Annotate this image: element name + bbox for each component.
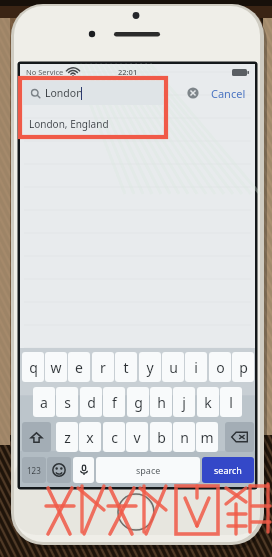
staticText: x (86, 428, 94, 447)
button[interactable]: i (185, 352, 207, 382)
button[interactable]: p (232, 352, 254, 382)
staticText: b (157, 428, 166, 447)
staticText: n (180, 428, 189, 447)
staticText: d (87, 393, 96, 412)
button[interactable]: g (127, 387, 149, 417)
button[interactable]: s (56, 387, 78, 417)
button[interactable]: Clear search (186, 86, 200, 100)
staticText: s (64, 393, 71, 412)
staticText: p (239, 358, 248, 377)
button[interactable]: London (23, 81, 163, 105)
button[interactable]: space (96, 457, 200, 483)
button[interactable]: k (197, 387, 219, 417)
button[interactable]: z (56, 422, 78, 452)
staticText: e (75, 358, 83, 377)
staticText: l (229, 393, 233, 412)
staticText: o (216, 358, 225, 377)
staticText: t (123, 358, 129, 377)
button[interactable]: r (92, 352, 114, 382)
button[interactable]: Shift (22, 422, 51, 452)
staticText: v (133, 428, 141, 447)
staticText: r (100, 358, 106, 377)
button[interactable]: Backspace (225, 422, 254, 452)
button[interactable]: h (150, 387, 172, 417)
staticText: y (146, 358, 154, 377)
staticText: 123 (27, 465, 41, 476)
staticText: c (111, 428, 118, 447)
button[interactable]: search (202, 457, 254, 483)
button[interactable]: l (220, 387, 242, 417)
button[interactable]: Dictation (73, 457, 94, 483)
staticText: a (40, 393, 48, 412)
button[interactable]: e (68, 352, 90, 382)
button[interactable]: u (162, 352, 184, 382)
button[interactable]: j (173, 387, 195, 417)
staticText: h (157, 393, 166, 412)
staticText: u (169, 358, 178, 377)
staticText: search (214, 464, 242, 476)
button[interactable]: Cancel (206, 83, 250, 103)
staticText: space (136, 464, 161, 476)
staticText: London, England (29, 117, 109, 131)
button[interactable]: x (79, 422, 101, 452)
staticText: m (200, 428, 214, 447)
button[interactable]: b (150, 422, 172, 452)
staticText: f (112, 393, 117, 412)
staticText: i (194, 358, 198, 377)
staticText: London (45, 86, 83, 100)
button[interactable]: Emoji (47, 457, 71, 483)
button[interactable]: o (209, 352, 231, 382)
staticText: w (50, 358, 62, 377)
staticText: No Service (26, 67, 64, 77)
button[interactable]: c (103, 422, 125, 452)
button[interactable]: London, England (20, 112, 255, 136)
staticText: q (29, 358, 38, 377)
button[interactable]: f (103, 387, 125, 417)
staticText: g (134, 393, 143, 412)
staticText: Cancel (211, 86, 246, 101)
staticText: k (204, 393, 212, 412)
button[interactable]: v (126, 422, 148, 452)
button[interactable]: m (196, 422, 218, 452)
button[interactable]: w (45, 352, 67, 382)
button[interactable]: d (80, 387, 102, 417)
button[interactable]: y (139, 352, 161, 382)
button[interactable]: Numbers and symbols (22, 457, 46, 483)
staticText: j (182, 393, 186, 412)
staticText: 22:01 (118, 67, 138, 77)
button[interactable]: n (173, 422, 195, 452)
button[interactable]: q (22, 352, 44, 382)
staticText: z (64, 428, 71, 447)
button[interactable]: a (33, 387, 55, 417)
button[interactable]: t (115, 352, 137, 382)
